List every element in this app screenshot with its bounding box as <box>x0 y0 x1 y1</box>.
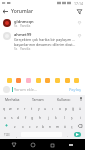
button[interactable]: t <box>28 103 35 112</box>
button[interactable]: k <box>52 112 60 121</box>
staticText: Kullanıcı <box>57 97 71 102</box>
button[interactable]: Emoji <box>25 77 31 83</box>
staticText: ahmet99 <box>14 32 32 37</box>
staticText: 5s <box>14 24 18 28</box>
staticText: o <box>59 106 61 110</box>
button[interactable]: Like <box>76 19 82 25</box>
staticText: n <box>49 124 52 128</box>
button[interactable]: l <box>60 112 68 121</box>
button[interactable]: v <box>33 121 40 130</box>
staticText: ı <box>52 106 53 110</box>
staticText: başarılarının devamını dilerim dostum <box>14 42 76 47</box>
button[interactable]: Enter <box>72 132 83 137</box>
staticText: ?123 <box>4 133 10 137</box>
button[interactable]: , <box>12 131 20 138</box>
button[interactable]: Like <box>76 32 82 38</box>
button[interactable]: Emoji <box>54 77 60 83</box>
button[interactable]: ı <box>49 103 56 112</box>
staticText: x <box>22 124 24 128</box>
button[interactable] <box>75 121 84 130</box>
button[interactable]: h <box>36 112 44 121</box>
button[interactable]: Yanıtla <box>20 24 31 28</box>
staticText: t <box>31 106 33 110</box>
button[interactable]: a <box>1 112 8 121</box>
button[interactable]: z <box>11 121 19 130</box>
staticText: y <box>38 106 40 110</box>
button[interactable]: p <box>63 103 70 112</box>
staticText: Merhaba <box>5 97 20 102</box>
button[interactable]: ö <box>61 121 68 130</box>
button[interactable]: ç <box>68 121 75 130</box>
button[interactable]: r <box>21 103 28 112</box>
button[interactable]: d <box>15 112 22 121</box>
button[interactable]: Kullanıcı <box>51 95 77 103</box>
staticText: Paylaş <box>69 87 81 92</box>
staticText: Gerçekten çok harika bir paylaşım olmuş, <box>14 37 76 42</box>
button[interactable]: q <box>1 103 7 112</box>
staticText: q <box>3 106 6 110</box>
button[interactable]: j <box>44 112 52 121</box>
button[interactable]: ü <box>77 103 84 112</box>
button[interactable]: Back <box>0 6 11 17</box>
staticText: d <box>17 115 20 119</box>
button[interactable]: Emoji <box>64 77 70 83</box>
staticText: j <box>48 115 49 119</box>
button[interactable]: b <box>40 121 47 130</box>
staticText: u <box>44 106 47 110</box>
staticText: ö <box>64 124 66 128</box>
staticText: b <box>42 124 45 128</box>
button[interactable]: Tamam <box>25 95 51 103</box>
button[interactable]: Emoji <box>15 77 21 83</box>
button[interactable]: m <box>54 121 61 130</box>
button[interactable]: ahmet99 <box>0 30 85 53</box>
staticText: ü <box>79 106 82 110</box>
staticText: z <box>14 124 16 128</box>
staticText: ç <box>71 124 73 128</box>
button[interactable]: Home <box>28 140 38 150</box>
staticText: r <box>24 106 26 110</box>
button[interactable]: Voice input <box>77 95 85 103</box>
staticText: l <box>64 115 65 119</box>
staticText: f <box>25 115 27 119</box>
button[interactable]: g <box>29 112 36 121</box>
button[interactable]: o <box>56 103 63 112</box>
staticText: g <box>31 115 34 119</box>
button[interactable]: Recents <box>47 140 57 150</box>
button[interactable]: Paylaş <box>68 86 82 93</box>
staticText: h <box>39 115 42 119</box>
button[interactable]: Hide keyboard <box>66 140 76 150</box>
button[interactable]: Emoji <box>35 77 41 83</box>
button[interactable]: ?123 <box>1 131 12 138</box>
button[interactable]: gldnmcqn <box>0 17 85 30</box>
button[interactable]: u <box>42 103 49 112</box>
button[interactable]: Emoji <box>73 77 79 83</box>
button[interactable]: i <box>76 112 84 121</box>
button[interactable]: ğ <box>70 103 77 112</box>
staticText: ğ <box>72 106 75 110</box>
button[interactable]: n <box>47 121 54 130</box>
button[interactable]: y <box>35 103 42 112</box>
staticText: Tamam <box>32 97 44 102</box>
button[interactable]: s <box>8 112 15 121</box>
button[interactable]: Yanıtla <box>20 47 31 51</box>
button[interactable]: Send <box>74 6 85 17</box>
button[interactable]: x <box>19 121 26 130</box>
staticText: Yorumlar <box>11 8 34 15</box>
button[interactable]: Emoji <box>44 77 50 83</box>
staticText: 17:14 <box>74 1 83 6</box>
button[interactable]: w <box>7 103 14 112</box>
button[interactable]: f <box>22 112 29 121</box>
staticText: w <box>9 106 12 110</box>
button[interactable]: e <box>14 103 21 112</box>
button[interactable]: Emoji <box>6 77 12 83</box>
staticText: m <box>56 124 60 128</box>
button[interactable]: Back <box>9 140 19 150</box>
button[interactable] <box>1 121 11 130</box>
button[interactable]: ş <box>68 112 76 121</box>
button[interactable]: c <box>26 121 33 130</box>
button[interactable]: Merhaba <box>0 95 25 103</box>
staticText: k <box>55 115 57 119</box>
